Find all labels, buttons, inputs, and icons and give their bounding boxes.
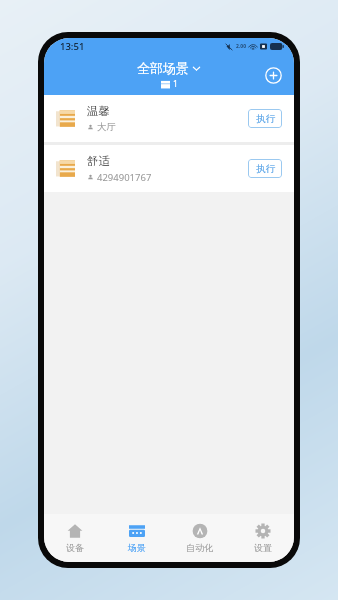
staticText: 2.00 (236, 43, 246, 50)
staticText: 场景 (128, 542, 146, 553)
button[interactable]: 场景 (106, 514, 168, 562)
staticText: 1 (173, 78, 178, 90)
staticText: 执行 (256, 163, 275, 175)
staticText: 大厅 (97, 121, 116, 133)
button[interactable]: Add scene (260, 62, 286, 88)
staticText: 执行 (256, 113, 275, 125)
staticText: 全部场景 (137, 60, 189, 76)
staticText: 13:51 (60, 40, 85, 53)
button[interactable]: 全部场景 (137, 60, 201, 90)
staticText: 舒适 (87, 154, 110, 168)
button[interactable]: 舒适 (44, 145, 294, 192)
staticText: 温馨 (87, 104, 110, 118)
staticText: 设置 (254, 542, 272, 553)
button[interactable]: 自动化 (168, 514, 231, 562)
button[interactable]: 执行 (248, 159, 282, 178)
button[interactable]: 设备 (44, 514, 106, 562)
staticText: 设备 (66, 542, 84, 553)
button[interactable]: 执行 (248, 109, 282, 128)
staticText: 自动化 (186, 542, 213, 553)
staticText: 4294901767 (97, 171, 152, 184)
button[interactable]: 设置 (231, 514, 294, 562)
button[interactable]: 温馨 (44, 95, 294, 142)
